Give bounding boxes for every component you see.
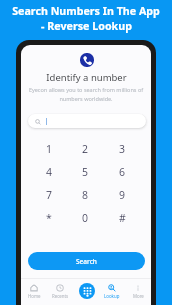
staticText: Recents [52,293,69,299]
button[interactable]: 1 [31,137,67,160]
button[interactable]: Dial pad [79,283,95,299]
staticText: # [119,211,126,225]
button[interactable]: 6 [104,160,141,183]
staticText: 2 [82,142,89,156]
button[interactable]: * [31,206,67,229]
staticText: 9 [119,188,126,202]
button[interactable]: 4 [31,160,67,183]
button[interactable]: 3 [104,137,141,160]
staticText: More [133,293,144,299]
staticText: 5 [82,165,89,179]
button[interactable]: Search [28,252,145,270]
staticText: 1 [46,142,53,156]
staticText: * [46,211,52,225]
button[interactable]: More [125,284,151,299]
button[interactable]: 8 [67,183,104,206]
button[interactable]: Lookup [99,284,125,299]
staticText: Eyecon allows you to search from million… [26,86,146,103]
staticText: - Reverse Lookup [41,19,132,34]
staticText: 8 [82,188,89,202]
button[interactable]: # [104,206,141,229]
staticText: 3 [119,142,126,156]
staticText: 0 [82,211,89,225]
staticText: 4 [46,165,53,179]
staticText: 7 [46,188,53,202]
button[interactable]: 0 [67,206,104,229]
button[interactable]: 5 [67,160,104,183]
staticText: Search Numbers In The App [12,4,160,19]
staticText: Lookup [104,293,120,299]
button[interactable]: 7 [31,183,67,206]
button[interactable]: Home [21,284,47,299]
button[interactable]: 2 [67,137,104,160]
staticText: Home [28,293,41,299]
staticText: Identify a number [46,71,127,84]
button[interactable] [28,114,146,128]
button[interactable]: 9 [104,183,141,206]
button[interactable]: Recents [47,284,73,299]
staticText: 6 [119,165,126,179]
staticText: Search [76,257,97,266]
